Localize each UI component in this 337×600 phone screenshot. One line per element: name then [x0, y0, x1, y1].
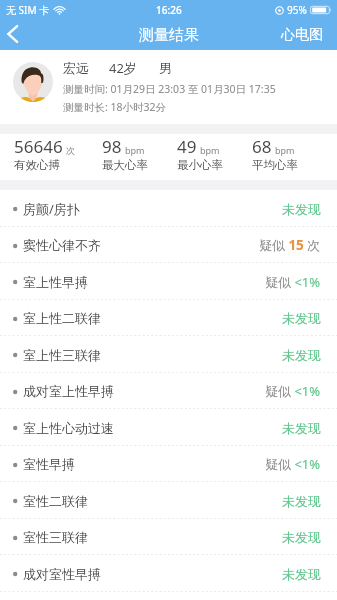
staticText: 测量结果 — [139, 26, 199, 45]
button[interactable]: 房颤/房扑 — [0, 190, 337, 227]
staticText: 次 — [66, 145, 75, 156]
staticText: 宏远 — [63, 60, 89, 76]
staticText: bpm — [275, 144, 295, 156]
button[interactable]: 成对室性早搏 — [0, 555, 337, 592]
staticText: 室上性二联律 — [23, 310, 101, 326]
staticText: 无 SIM 卡 — [6, 3, 50, 17]
staticText: 平均心率 — [252, 158, 298, 172]
staticText: 49 — [177, 135, 197, 158]
button[interactable]: 返回 — [0, 21, 25, 46]
staticText: 房颤/房扑 — [23, 200, 80, 218]
staticText: 疑似 <1% — [265, 273, 321, 291]
staticText: 16:26 — [156, 3, 182, 17]
staticText: 室上性三联律 — [23, 347, 101, 363]
staticText: 未发现 — [282, 310, 321, 326]
staticText: 疑似 15 次 — [259, 236, 321, 254]
staticText: 95% — [287, 3, 307, 17]
staticText: 有效心搏 — [14, 158, 60, 172]
staticText: 未发现 — [282, 529, 321, 545]
button[interactable]: 室性早搏 — [0, 446, 337, 482]
staticText: 室性二联律 — [23, 493, 88, 509]
staticText: 成对室性早搏 — [23, 566, 101, 582]
button[interactable]: 室上性心动过速 — [0, 409, 337, 446]
button[interactable]: 窦性心律不齐 — [0, 227, 337, 263]
button[interactable]: 室性二联律 — [0, 482, 337, 519]
staticText: bpm — [125, 144, 145, 156]
staticText: 疑似 <1% — [265, 455, 321, 473]
staticText: 56646 — [14, 135, 63, 158]
staticText: bpm — [200, 144, 220, 156]
staticText: 室性早搏 — [23, 456, 75, 472]
staticText: 最小心率 — [177, 158, 223, 172]
staticText: 窦性心律不齐 — [23, 237, 101, 253]
staticText: 疑似 <1% — [265, 382, 321, 400]
staticText: 最大心率 — [102, 158, 148, 172]
staticText: 测量时间: 01月29日 23:03 至 01月30日 17:35 — [63, 82, 276, 96]
button[interactable]: 心电图 — [271, 20, 337, 50]
staticText: 测量时长: 18小时32分 — [63, 100, 167, 114]
staticText: 心电图 — [281, 26, 323, 44]
button[interactable]: 成对室上性早搏 — [0, 373, 337, 409]
staticText: 未发现 — [282, 201, 321, 217]
button[interactable]: 室上性三联律 — [0, 336, 337, 373]
staticText: 42岁 — [109, 59, 137, 77]
staticText: 室上性心动过速 — [23, 420, 114, 436]
staticText: 未发现 — [282, 566, 321, 582]
staticText: 68 — [252, 135, 272, 158]
staticText: 成对室上性早搏 — [23, 383, 114, 399]
button[interactable]: 室上性早搏 — [0, 263, 337, 300]
button[interactable]: 室性三联律 — [0, 519, 337, 555]
staticText: 室性三联律 — [23, 529, 88, 545]
staticText: 未发现 — [282, 347, 321, 363]
staticText: 98 — [102, 135, 122, 158]
staticText: 男 — [159, 60, 172, 76]
staticText: 未发现 — [282, 420, 321, 436]
button[interactable]: 室上性二联律 — [0, 300, 337, 336]
staticText: 未发现 — [282, 493, 321, 509]
staticText: 室上性早搏 — [23, 274, 88, 290]
